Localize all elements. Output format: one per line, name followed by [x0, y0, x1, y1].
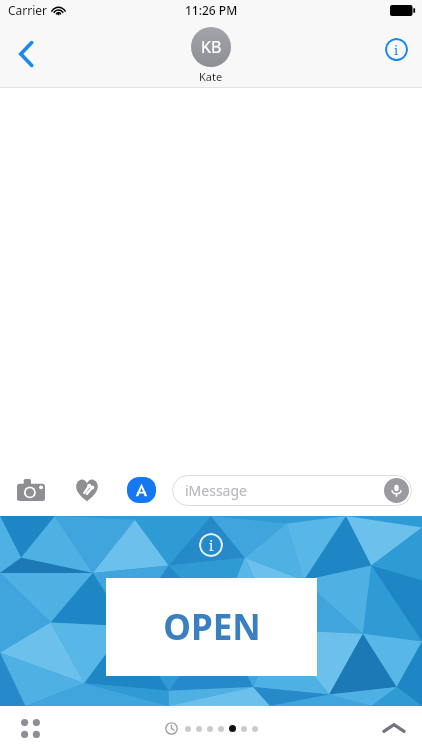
staticText: iMessage	[185, 481, 247, 500]
button[interactable]: Details	[378, 31, 414, 67]
button[interactable]: iMessage	[172, 475, 412, 506]
staticText: i	[209, 536, 214, 555]
button[interactable]: Info	[199, 533, 223, 557]
staticText: 11:26 PM	[185, 2, 238, 18]
button[interactable]: OPEN	[106, 578, 317, 676]
staticText: Carrier	[8, 2, 48, 18]
button[interactable]: Camera	[12, 471, 50, 509]
button[interactable]: Back	[6, 34, 46, 74]
button[interactable]: Expand	[374, 708, 414, 748]
button[interactable]: App Store	[122, 471, 160, 509]
button[interactable]: Dictate	[384, 478, 409, 503]
staticText: KB	[201, 36, 222, 58]
staticText: OPEN	[163, 603, 261, 651]
staticText: i	[394, 41, 399, 59]
staticText: Kate	[199, 69, 223, 84]
button[interactable]: KB	[191, 27, 231, 84]
button[interactable]: Digital Touch	[68, 471, 106, 509]
button[interactable]: Apps	[10, 708, 50, 748]
